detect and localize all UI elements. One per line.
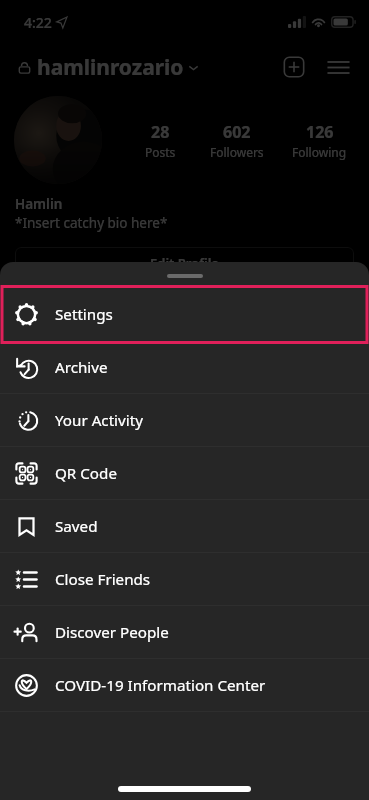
staticText: Archive bbox=[55, 357, 108, 378]
staticText: Settings bbox=[55, 304, 113, 325]
button[interactable]: COVID-19 Information Center bbox=[0, 659, 369, 712]
staticText: QR Code bbox=[55, 463, 117, 484]
staticText: 126 bbox=[306, 121, 334, 143]
button[interactable]: Archive bbox=[0, 341, 369, 394]
button[interactable]: Discover People bbox=[0, 606, 369, 659]
button[interactable]: QR Code bbox=[0, 447, 369, 500]
staticText: Discover People bbox=[55, 622, 169, 643]
staticText: Following bbox=[292, 144, 347, 160]
staticText: Close Friends bbox=[55, 569, 151, 590]
staticText: Posts bbox=[145, 144, 176, 160]
staticText: 28 bbox=[151, 121, 170, 143]
staticText: COVID-19 Information Center bbox=[55, 675, 266, 696]
button[interactable]: Close Friends bbox=[0, 553, 369, 606]
button[interactable]: Your Activity bbox=[0, 394, 369, 447]
staticText: Hamlin bbox=[15, 195, 63, 213]
staticText: hamlinrozario bbox=[37, 53, 184, 82]
staticText: Followers bbox=[210, 144, 264, 160]
staticText: Your Activity bbox=[55, 410, 143, 431]
staticText: Edit Profile bbox=[150, 254, 219, 272]
staticText: Saved bbox=[55, 516, 98, 537]
button[interactable]: Menu bbox=[323, 52, 353, 82]
staticText: 4:22 bbox=[24, 13, 52, 32]
button[interactable]: New post bbox=[279, 52, 309, 82]
button[interactable]: Edit Profile bbox=[15, 247, 354, 279]
staticText: 602 bbox=[223, 121, 251, 143]
button[interactable]: Saved bbox=[0, 500, 369, 553]
staticText: *Insert catchy bio here* bbox=[15, 214, 168, 232]
button[interactable]: Settings bbox=[0, 288, 369, 341]
